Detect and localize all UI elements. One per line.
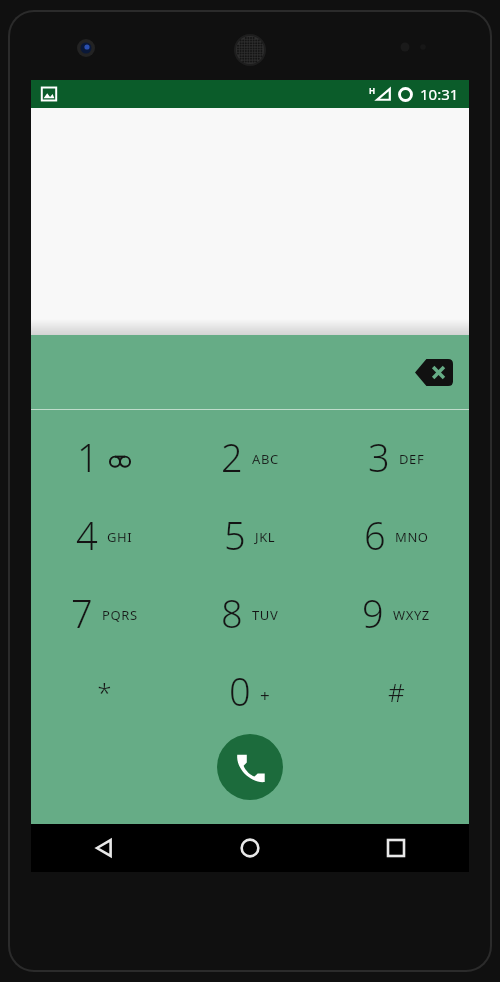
staticText: 4	[76, 509, 98, 561]
button[interactable]: Call	[217, 734, 283, 800]
staticText: MNO	[395, 528, 429, 546]
button[interactable]: Recent apps	[323, 824, 469, 872]
staticText: 2	[221, 431, 243, 483]
staticText: 5	[224, 509, 246, 561]
button[interactable]: 3	[323, 418, 469, 496]
staticText: 8	[221, 587, 243, 639]
staticText: WXYZ	[393, 606, 430, 624]
staticText: +	[260, 684, 271, 707]
staticText: 9	[362, 587, 384, 639]
button[interactable]: 9	[323, 574, 469, 652]
staticText: DEF	[399, 450, 425, 468]
staticText: GHI	[107, 528, 133, 546]
button[interactable]: 7	[31, 574, 177, 652]
button[interactable]: 8	[177, 574, 323, 652]
staticText: *	[97, 674, 112, 709]
button[interactable]: Home	[177, 824, 323, 872]
staticText: 6	[364, 509, 386, 561]
staticText: PQRS	[102, 606, 138, 624]
staticText: 10:31	[420, 84, 459, 104]
button[interactable]: 2	[177, 418, 323, 496]
staticText: #	[388, 674, 405, 709]
button[interactable]: 6	[323, 496, 469, 574]
button[interactable]: *	[31, 652, 177, 730]
button[interactable]: #	[323, 652, 469, 730]
button[interactable]: 4	[31, 496, 177, 574]
staticText: 7	[71, 587, 93, 639]
button[interactable]: 1	[31, 418, 177, 496]
button[interactable]: 5	[177, 496, 323, 574]
staticText: H	[369, 85, 376, 96]
button[interactable]: 0	[177, 652, 323, 730]
staticText: 3	[368, 431, 390, 483]
staticText: ABC	[252, 450, 279, 468]
button[interactable]: Back	[31, 824, 177, 872]
staticText: TUV	[252, 606, 279, 624]
staticText: JKL	[255, 528, 276, 546]
staticText: 0	[229, 665, 251, 717]
button[interactable]: Backspace	[407, 349, 461, 395]
staticText: 1	[77, 431, 99, 483]
